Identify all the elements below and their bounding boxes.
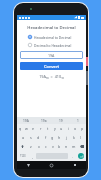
button[interactable]: w bbox=[23, 124, 30, 133]
staticText: q bbox=[19, 126, 22, 131]
staticText: m bbox=[72, 144, 76, 149]
button[interactable]: 19a bbox=[35, 117, 52, 124]
button[interactable]: q bbox=[17, 124, 23, 133]
staticText: d bbox=[37, 135, 40, 140]
staticText: o bbox=[74, 126, 77, 131]
button[interactable]: p bbox=[79, 124, 86, 133]
staticText: w bbox=[25, 126, 28, 131]
staticText: 19A bbox=[48, 53, 55, 58]
button[interactable]: b bbox=[56, 142, 63, 151]
staticText: t bbox=[47, 126, 49, 131]
staticText: Decimal to Hexadecimal bbox=[34, 43, 72, 47]
staticText: e bbox=[32, 126, 35, 131]
staticText: h bbox=[58, 135, 61, 140]
button[interactable]: Recents bbox=[63, 161, 86, 169]
staticText: k bbox=[73, 135, 75, 140]
button[interactable]: j bbox=[63, 133, 70, 142]
button[interactable]: Shift bbox=[17, 142, 27, 151]
button[interactable]: s bbox=[27, 133, 35, 142]
button[interactable]: 19A bbox=[17, 117, 35, 124]
staticText: i bbox=[68, 126, 69, 131]
staticText: Convert bbox=[44, 64, 60, 69]
staticText: b bbox=[58, 144, 61, 149]
button[interactable]: 19A bbox=[20, 51, 83, 59]
staticText: 1 bbox=[77, 119, 79, 123]
button[interactable]: m bbox=[70, 142, 77, 151]
staticText: c bbox=[45, 144, 47, 149]
button[interactable]: , bbox=[29, 151, 35, 161]
button[interactable]: Hexadecimal to Decimal bbox=[20, 35, 83, 39]
button[interactable]: 1 bbox=[69, 117, 86, 124]
staticText: 19a bbox=[41, 119, 47, 123]
staticText: ?123 bbox=[20, 154, 26, 158]
button[interactable]: u bbox=[58, 124, 65, 133]
button[interactable]: i bbox=[65, 124, 72, 133]
staticText: p bbox=[81, 126, 84, 131]
button[interactable]: f bbox=[42, 133, 49, 142]
staticText: f bbox=[45, 135, 47, 140]
button[interactable]: r bbox=[37, 124, 44, 133]
button[interactable]: h bbox=[56, 133, 63, 142]
button[interactable]: t bbox=[44, 124, 51, 133]
staticText: x bbox=[38, 144, 40, 149]
staticText: 19A₁₆ = 410₁₀ bbox=[39, 74, 64, 79]
button[interactable]: k bbox=[70, 133, 77, 142]
staticText: Hexadecimal to Decimal bbox=[34, 35, 72, 39]
staticText: s bbox=[30, 135, 32, 140]
button[interactable]: a bbox=[19, 133, 27, 142]
button[interactable]: ?123 bbox=[17, 151, 29, 161]
button[interactable]: x bbox=[35, 142, 42, 151]
button[interactable]: Back bbox=[17, 161, 40, 169]
button[interactable]: g bbox=[49, 133, 56, 142]
staticText: l bbox=[80, 135, 81, 140]
staticText: , bbox=[32, 154, 33, 159]
button[interactable]: l bbox=[77, 133, 84, 142]
staticText: j bbox=[66, 135, 67, 140]
staticText: g bbox=[51, 135, 54, 140]
staticText: u bbox=[60, 126, 63, 131]
staticText: Hexadecimal to Decimal bbox=[27, 25, 76, 31]
staticText: y bbox=[54, 126, 56, 131]
button[interactable]: z bbox=[27, 142, 35, 151]
button[interactable]: y bbox=[51, 124, 58, 133]
button[interactable]: 19 bbox=[52, 117, 69, 124]
button[interactable]: Decimal to Hexadecimal bbox=[20, 43, 83, 47]
button[interactable]: o bbox=[72, 124, 79, 133]
button[interactable]: Backspace bbox=[77, 142, 86, 151]
staticText: r bbox=[40, 126, 42, 131]
button[interactable]: Enter bbox=[75, 151, 86, 161]
button[interactable]: c bbox=[42, 142, 49, 151]
staticText: a bbox=[22, 135, 25, 140]
staticText: 19A bbox=[23, 119, 29, 123]
staticText: v bbox=[52, 144, 54, 149]
button[interactable]: d bbox=[35, 133, 42, 142]
button[interactable]: Home bbox=[40, 161, 63, 169]
staticText: 19 bbox=[59, 119, 63, 123]
staticText: . bbox=[72, 154, 73, 159]
button[interactable]: e bbox=[30, 124, 37, 133]
staticText: z bbox=[30, 144, 32, 149]
staticText: n bbox=[65, 144, 68, 149]
button[interactable]: Convert bbox=[20, 62, 83, 70]
button[interactable]: n bbox=[63, 142, 70, 151]
button[interactable]: v bbox=[49, 142, 56, 151]
